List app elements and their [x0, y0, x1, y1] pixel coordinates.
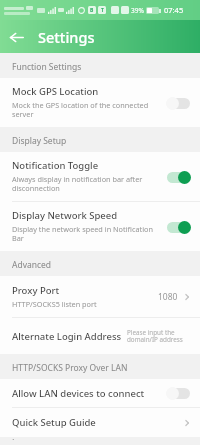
- staticText: T: [101, 7, 104, 14]
- button[interactable]: Proxy Port: [0, 276, 200, 317]
- button[interactable]: Back: [0, 21, 32, 53]
- staticText: Function Settings: [12, 61, 82, 73]
- button[interactable]: Mock GPS Location: [0, 78, 200, 127]
- staticText: HTTP/SOCKS Proxy Over LAN: [12, 362, 128, 374]
- staticText: Allow LAN devices to connect: [12, 387, 145, 400]
- button[interactable]: Display Network Speed: [0, 202, 200, 251]
- button[interactable]: Quick Setup Guide: [0, 408, 200, 437]
- staticText: Advanced: [12, 259, 52, 271]
- staticText: 39%: [131, 6, 144, 15]
- staticText: Display Setup: [12, 135, 67, 147]
- button[interactable]: Alternate Login Address: [0, 318, 200, 354]
- staticText: Proxy Port: [12, 284, 60, 297]
- staticText: Quick Setup Guide: [12, 416, 96, 429]
- staticText: Alternate Login Address: [12, 330, 122, 343]
- staticText: B: [90, 7, 94, 14]
- staticText: Please input the domain/IP address: [127, 328, 194, 344]
- staticText: HTTP/SOCKS5 listen port: [12, 299, 97, 309]
- staticText: Always display in notification bar after…: [12, 174, 160, 194]
- staticText: 07:45: [164, 5, 184, 15]
- staticText: Notification Toggle: [12, 159, 99, 172]
- staticText: Language: [12, 437, 52, 440]
- staticText: Mock the GPS location of the connected s…: [12, 100, 160, 120]
- staticText: Display Network Speed: [12, 209, 118, 222]
- button[interactable]: Notification Toggle: [0, 152, 200, 201]
- staticText: 1080: [158, 291, 178, 303]
- staticText: Settings: [38, 27, 95, 47]
- staticText: Mock GPS Location: [12, 85, 99, 98]
- staticText: Display the network speed in Notificatio…: [12, 224, 160, 244]
- button[interactable]: Allow LAN devices to connect: [0, 379, 200, 407]
